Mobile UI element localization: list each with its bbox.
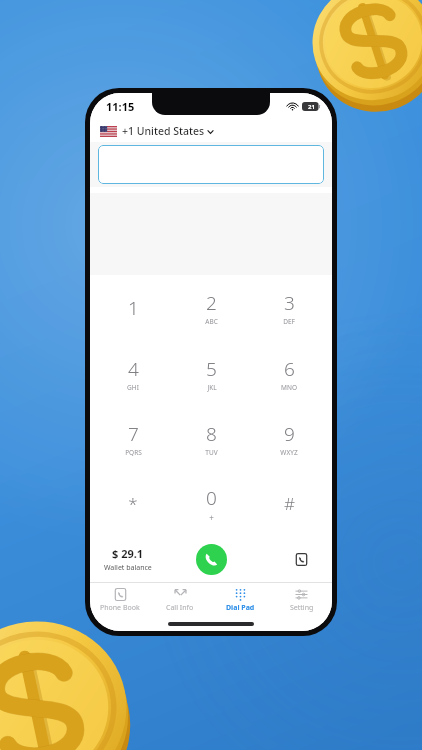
staticText: 4: [128, 356, 139, 382]
button[interactable]: Dial Pad: [210, 583, 271, 617]
staticText: 5: [206, 356, 217, 382]
staticText: 0: [206, 485, 217, 511]
staticText: JKL: [207, 383, 217, 392]
button[interactable]: 8: [172, 406, 250, 471]
staticText: Wallet balance: [104, 563, 152, 573]
staticText: TUV: [205, 448, 218, 457]
staticText: MNO: [281, 383, 297, 392]
button[interactable]: Contacts: [290, 548, 312, 570]
button[interactable]: 0: [172, 471, 250, 536]
button[interactable]: 7: [94, 406, 172, 471]
staticText: GHI: [127, 383, 139, 392]
staticText: 9: [284, 421, 295, 447]
staticText: ABC: [205, 317, 218, 326]
staticText: 8: [206, 421, 217, 447]
staticText: +1 United States: [122, 124, 205, 138]
staticText: 11:15: [106, 99, 135, 114]
button[interactable]: [98, 145, 324, 184]
staticText: 7: [128, 421, 139, 447]
staticText: Call Info: [166, 603, 194, 613]
button[interactable]: 6: [250, 341, 328, 406]
staticText: 21: [308, 103, 315, 111]
staticText: $ 29.1: [112, 546, 144, 561]
staticText: WXYZ: [280, 448, 298, 457]
button[interactable]: 2: [172, 275, 250, 341]
staticText: *: [128, 492, 138, 515]
staticText: 3: [284, 290, 295, 316]
staticText: Setting: [290, 603, 314, 613]
staticText: 1: [128, 295, 139, 321]
staticText: Phone Book: [100, 603, 140, 613]
staticText: PQRS: [125, 448, 142, 457]
staticText: Dial Pad: [226, 603, 255, 613]
staticText: DEF: [283, 317, 295, 326]
button[interactable]: Phone Book: [90, 583, 150, 617]
button[interactable]: Call: [196, 544, 227, 575]
button[interactable]: #: [250, 471, 328, 536]
button[interactable]: *: [94, 471, 172, 536]
staticText: 6: [284, 356, 295, 382]
button[interactable]: 4: [94, 341, 172, 406]
button[interactable]: 3: [250, 275, 328, 341]
button[interactable]: $ 29.1: [104, 546, 152, 573]
staticText: +: [209, 512, 214, 523]
button[interactable]: Setting: [271, 583, 332, 617]
button[interactable]: Call Info: [150, 583, 210, 617]
button[interactable]: 1: [94, 275, 172, 341]
button[interactable]: +1 United States: [90, 119, 332, 142]
button[interactable]: 5: [172, 341, 250, 406]
button[interactable]: 9: [250, 406, 328, 471]
staticText: #: [284, 492, 295, 515]
staticText: 2: [206, 290, 217, 316]
